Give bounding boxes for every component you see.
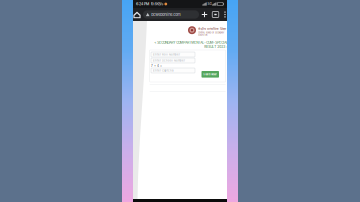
staticText: 19.6KB/s xyxy=(151,2,164,6)
staticText: Enter Roll Number xyxy=(153,53,180,56)
button[interactable]: Search Result xyxy=(201,71,219,78)
staticText: 6:24 PM xyxy=(136,2,149,6)
staticText: Search Result xyxy=(203,73,217,76)
staticText: Enter School Number xyxy=(153,59,185,62)
button[interactable]: More options xyxy=(221,8,229,21)
staticText: < SECONDARY COMPARTMENTAL-CUM-SPECIAL xyxy=(154,41,228,45)
staticText: केंद्रीय माध्यमिक शिक्षा बोर्ड xyxy=(198,26,232,31)
staticText: 7 + 4 = xyxy=(151,64,162,68)
staticText: 5G xyxy=(207,2,211,6)
staticText: bcwebonline.com xyxy=(151,12,180,17)
button[interactable]: Home xyxy=(131,8,143,21)
staticText: Enter Captcha xyxy=(153,69,173,72)
staticText: RESULT 2023 > xyxy=(204,45,228,49)
staticText: CENTRAL BOARD OF SECONDARY EDUCATION xyxy=(198,31,224,36)
button[interactable]: bcwebonline.com xyxy=(143,10,199,19)
button[interactable]: New tab xyxy=(199,8,210,21)
button[interactable]: Tabs xyxy=(210,8,221,21)
